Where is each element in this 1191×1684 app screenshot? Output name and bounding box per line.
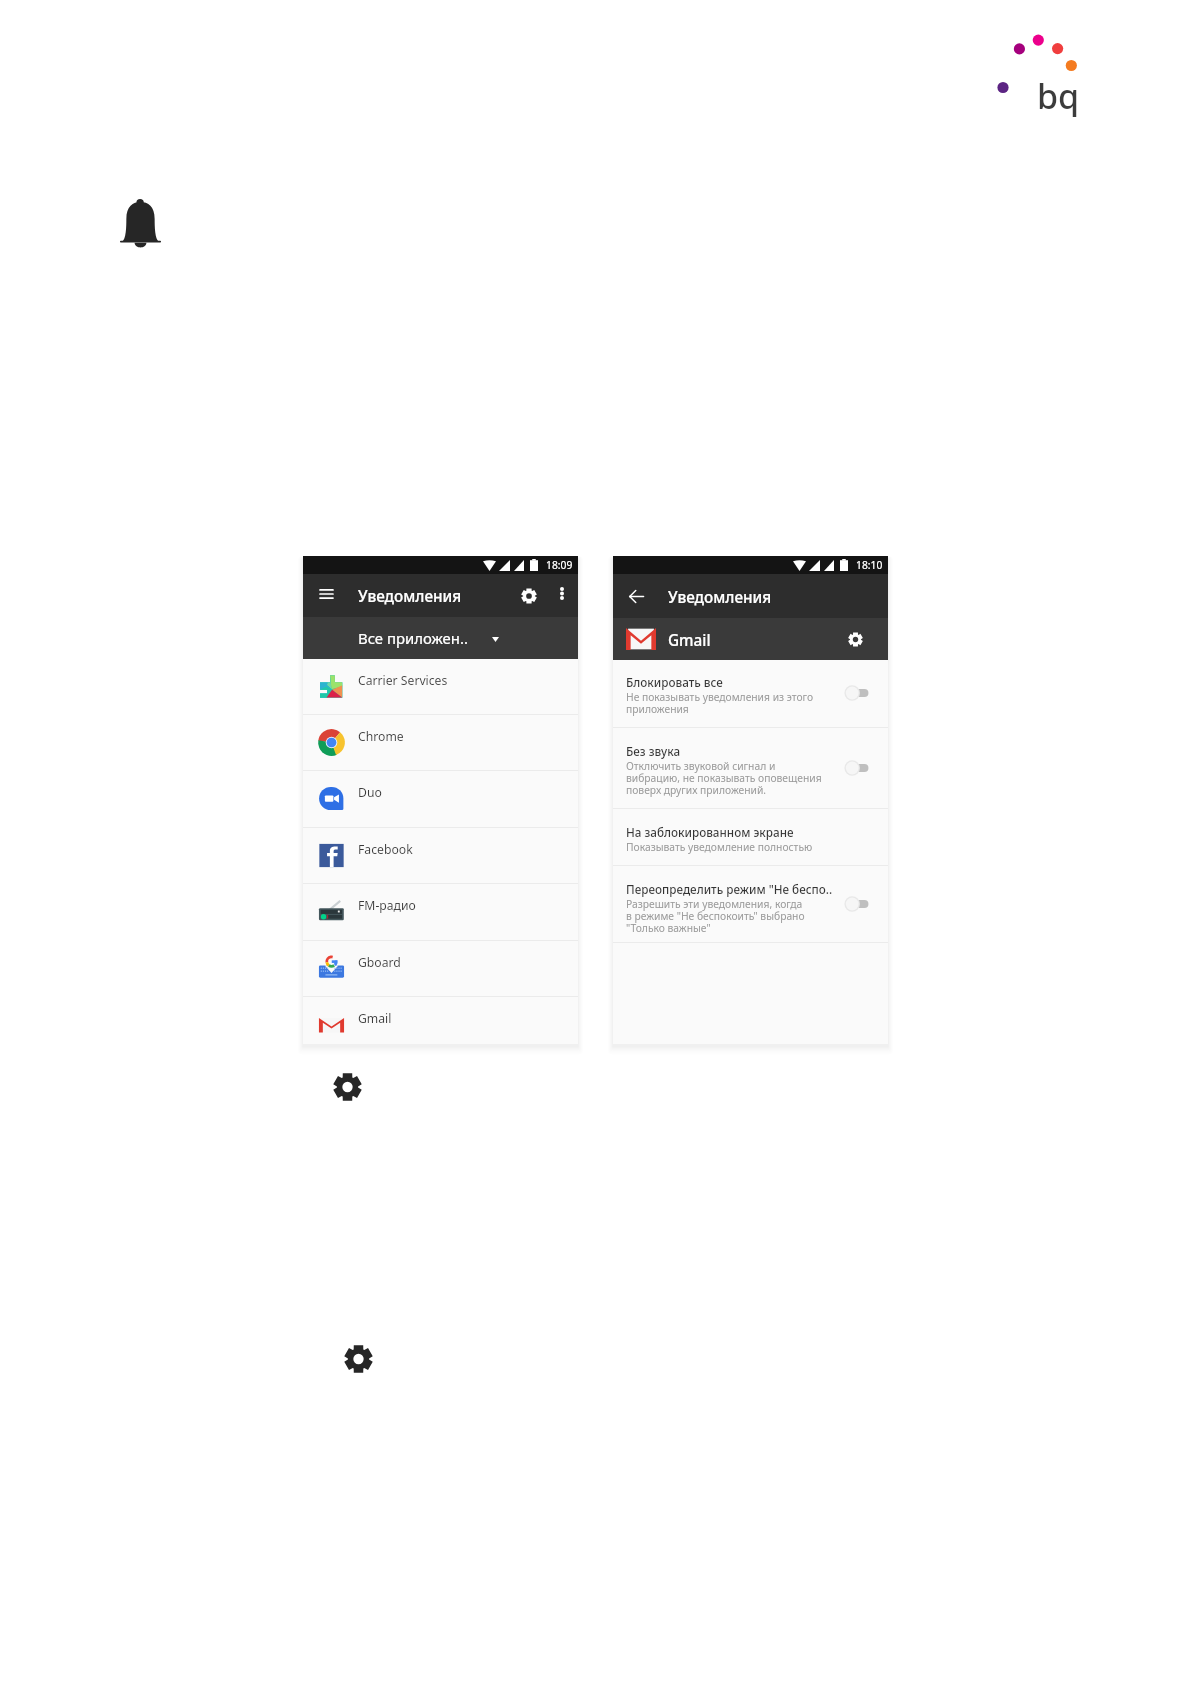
staticText: Все приложен.. [358,628,468,648]
button[interactable]: Все приложен.. [303,617,578,659]
button[interactable]: Toggle Без звука [834,727,880,808]
button[interactable]: Переопределить режим "Не беспо.. [613,865,888,942]
staticText: "Только важные" [626,921,711,935]
staticText: bq [1037,73,1080,119]
button[interactable]: Без звука [613,727,888,808]
button[interactable]: Settings [516,583,542,609]
button[interactable]: Back [622,582,650,610]
staticText: Без звука [626,743,681,759]
button[interactable]: More options [550,581,574,605]
staticText: Разрешить эти уведомления, когда [626,897,803,911]
button[interactable]: Facebook [303,828,578,884]
button[interactable]: Блокировать все [613,659,888,727]
button[interactable]: Toggle Переопределить режим "Не беспо.. [834,865,880,942]
staticText: Блокировать все [626,674,723,690]
staticText: На заблокированном экране [626,824,794,840]
staticText: 18:10 [856,558,883,572]
staticText: Отключить звуковой сигнал и [626,759,776,773]
staticText: Chrome [358,728,404,745]
staticText: приложения [626,702,689,716]
button[interactable]: FM-радио [303,884,578,940]
staticText: поверх других приложений. [626,783,767,797]
staticText: Показывать уведомление полностью [626,840,813,854]
button[interactable]: Menu [312,580,340,608]
staticText: 18:09 [546,558,573,572]
button[interactable]: Duo [303,771,578,827]
staticText: Gmail [668,630,711,651]
button[interactable]: На заблокированном экране [613,808,888,865]
button[interactable]: Gmail [303,997,578,1053]
staticText: в режиме "Не беспокоить" выбрано [626,909,805,923]
button[interactable]: Toggle Блокировать все [834,659,880,727]
button[interactable]: Settings [344,1344,373,1374]
button[interactable]: App notification settings [842,626,868,652]
staticText: Не показывать уведомления из этого [626,690,814,704]
staticText: Gmail [358,1010,392,1027]
staticText: Переопределить режим "Не беспо.. [626,881,833,897]
button[interactable] [613,618,888,660]
button[interactable]: Chrome [303,715,578,771]
staticText: FM-радио [358,897,416,914]
staticText: Facebook [358,841,413,858]
staticText: Уведомления [668,587,772,608]
button[interactable]: Carrier Services [303,659,578,715]
staticText: Gboard [358,954,401,971]
button[interactable]: Notifications [120,199,161,249]
button[interactable]: Gboard [303,941,578,997]
button[interactable]: Settings [333,1072,362,1102]
staticText: Уведомления [358,586,462,607]
staticText: Carrier Services [358,672,448,689]
staticText: Duo [358,784,382,801]
staticText: вибрацию, не показывать оповещения [626,771,822,785]
